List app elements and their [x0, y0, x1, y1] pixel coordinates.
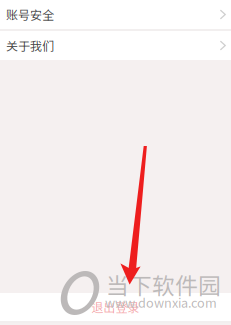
button[interactable]: 账号安全 — [0, 0, 231, 29]
staticText: 关于我们 — [6, 37, 54, 54]
staticText: www.downxia.com — [105, 293, 217, 311]
staticText: 当下软件园 — [106, 268, 221, 301]
button[interactable]: 关于我们 — [0, 31, 231, 60]
staticText: 退出登录 — [91, 298, 139, 316]
button[interactable]: 退出登录 — [0, 293, 231, 321]
staticText: 账号安全 — [6, 6, 54, 23]
